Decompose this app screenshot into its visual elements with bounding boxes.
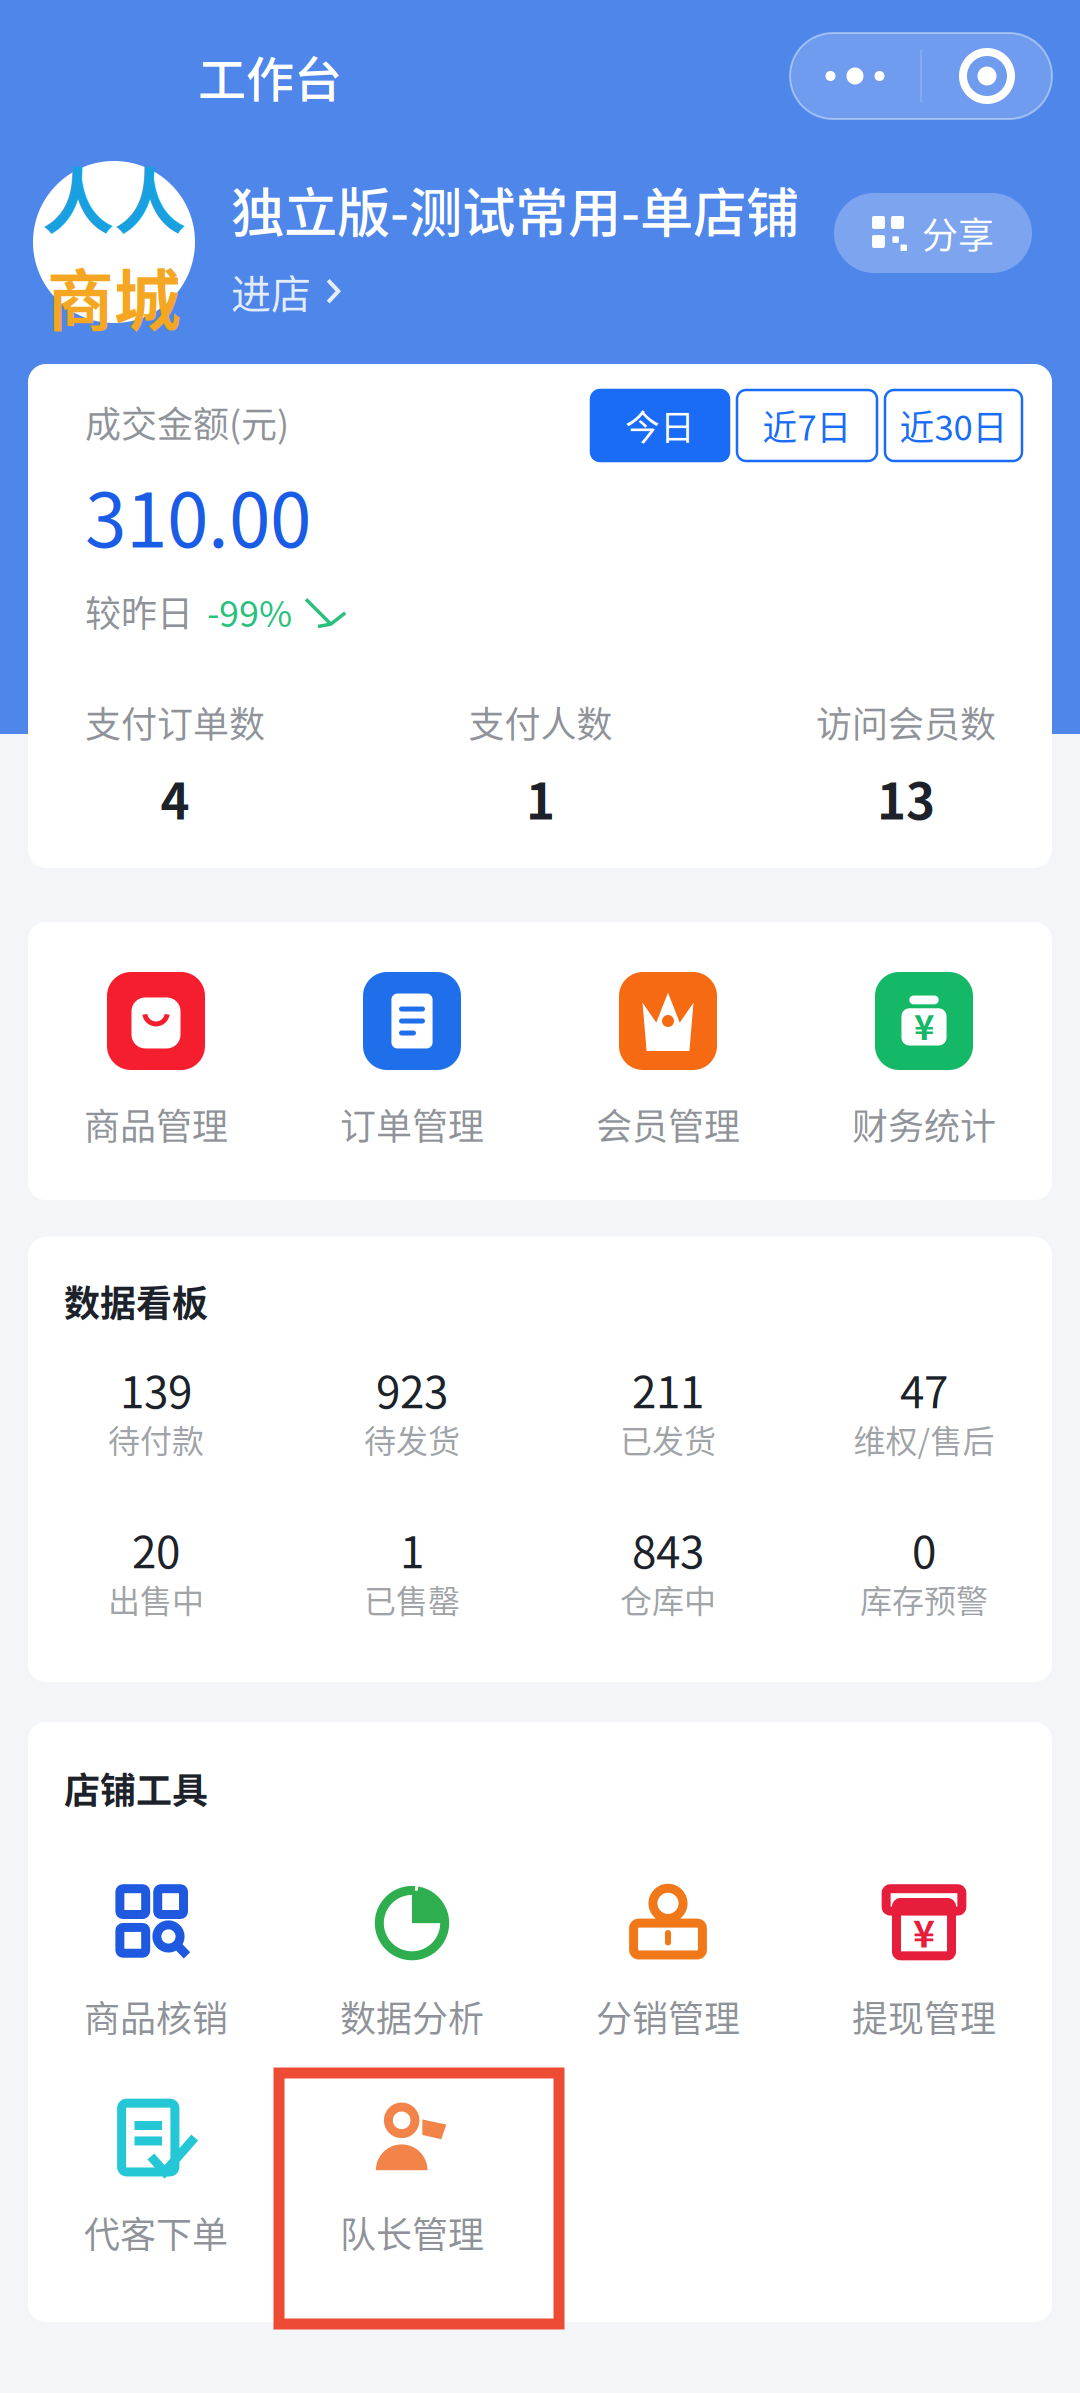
staticText: 待付款 — [108, 1416, 204, 1462]
button[interactable]: 923 — [284, 1369, 540, 1456]
button[interactable]: 1 — [284, 1529, 540, 1616]
button[interactable]: Close — [922, 33, 1052, 119]
staticText: 商品管理 — [84, 1098, 228, 1150]
staticText: 待发货 — [364, 1416, 460, 1462]
staticText: 店铺工具 — [64, 1762, 208, 1814]
staticText: 近7日 — [762, 400, 851, 451]
staticText: 139 — [120, 1357, 192, 1421]
staticText: 商城 — [47, 248, 181, 344]
staticText: 已售罄 — [364, 1576, 460, 1622]
staticText: 支付人数 — [468, 696, 612, 748]
button[interactable]: 211 — [540, 1369, 796, 1456]
staticText: -99% — [207, 585, 292, 637]
button[interactable]: More — [790, 33, 920, 119]
staticText: 会员管理 — [596, 1098, 740, 1150]
button[interactable]: 843 — [540, 1529, 796, 1616]
staticText: 分销管理 — [596, 1990, 740, 2042]
staticText: 仓库中 — [620, 1576, 716, 1622]
staticText: 20 — [132, 1517, 180, 1581]
button[interactable]: 代客下单 — [28, 2096, 284, 2258]
staticText: ¥ — [914, 1000, 934, 1050]
staticText: 提现管理 — [852, 1990, 996, 2042]
button[interactable]: 分享 — [834, 193, 1032, 273]
button[interactable]: 今日 — [591, 390, 729, 461]
button[interactable]: 0 — [796, 1529, 1052, 1616]
staticText: 今日 — [625, 400, 695, 451]
button[interactable]: 队长管理 — [284, 2096, 540, 2258]
staticText: 出售中 — [108, 1576, 204, 1622]
staticText: 成交金额(元) — [85, 396, 289, 448]
staticText: 工作台 — [198, 41, 342, 111]
staticText: 47 — [900, 1357, 948, 1421]
staticText: 数据看板 — [64, 1275, 208, 1327]
staticText: 商品核销 — [84, 1990, 228, 2042]
button[interactable]: ¥ — [796, 972, 1052, 1150]
button[interactable]: 20 — [28, 1529, 284, 1616]
staticText: 211 — [632, 1357, 704, 1421]
staticText: 1 — [400, 1517, 424, 1581]
button[interactable]: 近30日 — [885, 390, 1022, 461]
staticText: 支付订单数 — [85, 696, 265, 748]
staticText: 已发货 — [620, 1416, 716, 1462]
staticText: 310.00 — [85, 461, 311, 569]
button[interactable]: 47 — [796, 1369, 1052, 1456]
staticText: 数据分析 — [340, 1990, 484, 2042]
staticText: 人人 — [42, 144, 186, 248]
staticText: 4 — [160, 762, 189, 834]
staticText: 13 — [877, 762, 935, 834]
button[interactable]: 商品核销 — [28, 1880, 284, 2042]
button[interactable]: 订单管理 — [284, 972, 540, 1150]
staticText: 0 — [912, 1517, 936, 1581]
staticText: 独立版-测试常用-单店铺 — [231, 171, 799, 248]
staticText: 843 — [632, 1517, 704, 1581]
staticText: 维权/售后 — [853, 1416, 994, 1462]
staticText: 923 — [376, 1357, 448, 1421]
staticText: 访问会员数 — [816, 696, 996, 748]
button[interactable]: ¥ — [796, 1880, 1052, 2042]
staticText: 库存预警 — [860, 1576, 988, 1622]
button[interactable]: 数据分析 — [284, 1880, 540, 2042]
staticText: 进店 — [231, 262, 311, 320]
staticText: 分享 — [922, 207, 994, 259]
staticText: 财务统计 — [852, 1098, 996, 1150]
staticText: 1 — [526, 762, 555, 834]
staticText: 较昨日 — [85, 585, 193, 637]
staticText: 代客下单 — [84, 2206, 228, 2258]
button[interactable]: 会员管理 — [540, 972, 796, 1150]
staticText: ¥ — [913, 1904, 935, 1958]
button[interactable]: 商品管理 — [28, 972, 284, 1150]
button[interactable]: 分销管理 — [540, 1880, 796, 2042]
staticText: 队长管理 — [340, 2206, 484, 2258]
staticText: 订单管理 — [340, 1098, 484, 1150]
button[interactable]: 近7日 — [737, 390, 877, 461]
button[interactable]: 139 — [28, 1369, 284, 1456]
staticText: 近30日 — [899, 400, 1007, 451]
